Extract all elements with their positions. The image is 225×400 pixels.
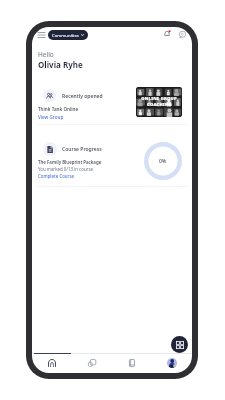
staticText: Olivia Ryhe [38, 59, 83, 70]
button[interactable]: Notifications [160, 27, 174, 41]
staticText: COACHING [147, 102, 172, 108]
button[interactable]: View Group [38, 114, 64, 120]
staticText: 0% [159, 158, 167, 165]
button[interactable]: Chat [72, 354, 112, 372]
staticText: ONLINE GROUP [141, 96, 177, 102]
button[interactable]: Create new [171, 336, 188, 353]
staticText: View Group [38, 114, 64, 120]
staticText: Course Progress [62, 146, 102, 153]
button[interactable]: Communities [48, 30, 88, 40]
staticText: You marked 0/13 in course [38, 166, 93, 172]
staticText: Hello [38, 50, 54, 59]
button[interactable]: Menu [35, 28, 48, 41]
button[interactable]: Online group coaching thumbnail [136, 87, 182, 117]
staticText: Think Tank Online [38, 106, 79, 112]
staticText: The Family Blueprint Package [38, 159, 102, 165]
button[interactable]: Messages [175, 27, 189, 41]
button[interactable]: Library [112, 354, 152, 372]
button[interactable]: Complete Course [38, 173, 75, 179]
staticText: Recently opened [62, 93, 103, 100]
staticText: Communities [52, 32, 79, 38]
button[interactable]: Home [32, 354, 72, 372]
button[interactable]: Profile [152, 354, 192, 372]
staticText: Complete Course [38, 173, 75, 179]
